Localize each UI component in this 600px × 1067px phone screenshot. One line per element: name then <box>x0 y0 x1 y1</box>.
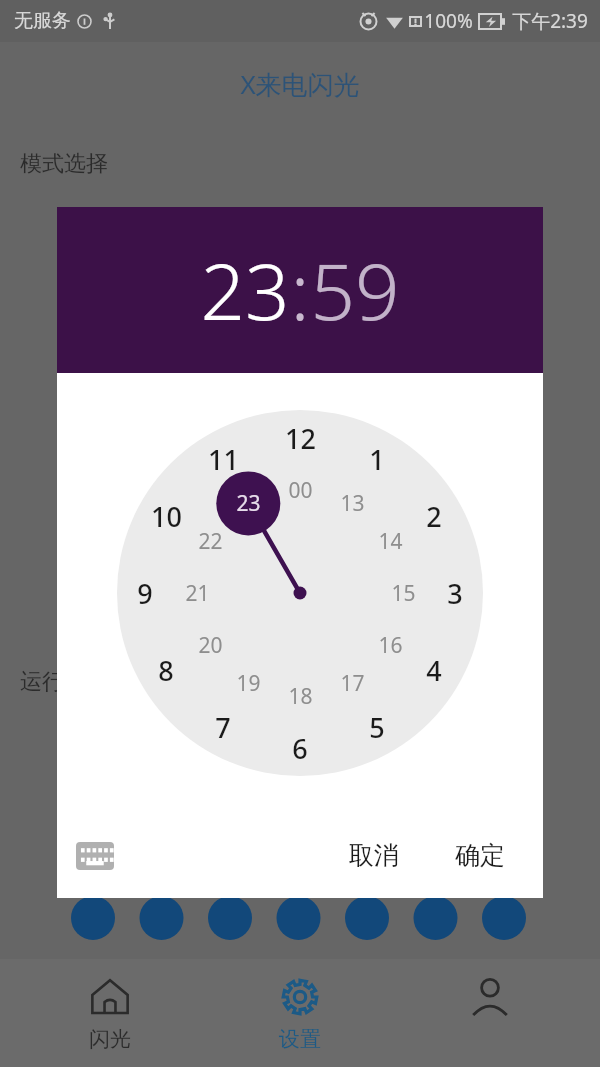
button[interactable]: 确定 <box>439 830 521 881</box>
button[interactable]: 23 <box>200 237 290 343</box>
staticText: 23 <box>236 489 261 518</box>
staticText: 15 <box>391 579 416 608</box>
staticText: 22 <box>198 527 223 556</box>
button[interactable]: 7 <box>200 704 246 750</box>
staticText: 19 <box>236 669 261 698</box>
staticText: 3 <box>447 575 463 612</box>
button[interactable]: 19 <box>225 660 271 706</box>
staticText: 18 <box>288 682 313 711</box>
button[interactable]: Profile <box>410 966 570 1060</box>
button[interactable]: 15 <box>380 570 426 616</box>
staticText: 21 <box>185 579 210 608</box>
button[interactable]: 17 <box>329 660 375 706</box>
staticText: 20 <box>198 631 223 660</box>
staticText: 4 <box>426 652 442 689</box>
staticText: 8 <box>158 652 174 689</box>
button[interactable]: 21 <box>174 570 220 616</box>
staticText: 23 <box>200 237 290 343</box>
staticText: 闪光 <box>89 1026 131 1052</box>
button[interactable]: 设置 <box>220 966 380 1060</box>
button[interactable]: 闪光 <box>30 966 190 1060</box>
staticText: 下午2:39 <box>512 8 588 34</box>
button[interactable]: 23 <box>225 480 271 526</box>
button[interactable]: 1 <box>354 436 400 482</box>
staticText: : <box>290 237 310 343</box>
staticText: 5 <box>369 709 385 746</box>
staticText: 运行 <box>20 668 64 696</box>
button[interactable]: 8 <box>143 647 189 693</box>
staticText: 取消 <box>349 840 399 871</box>
staticText: 16 <box>378 631 403 660</box>
button[interactable]: 6 <box>277 725 323 771</box>
button[interactable]: 9 <box>122 570 168 616</box>
staticText: 10 <box>151 498 182 535</box>
staticText: 确定 <box>455 840 505 871</box>
button[interactable]: 22 <box>187 518 233 564</box>
staticText: 00 <box>288 476 313 505</box>
staticText: 6 <box>292 730 308 767</box>
button[interactable]: 12 <box>277 415 323 461</box>
staticText: 2 <box>426 498 442 535</box>
staticText: 59 <box>310 237 400 343</box>
button[interactable]: 4 <box>411 647 457 693</box>
staticText: 1 <box>369 441 385 478</box>
staticText: 无服务 <box>14 9 71 33</box>
staticText: 13 <box>340 489 365 518</box>
button[interactable]: 18 <box>277 673 323 719</box>
button[interactable]: 10 <box>143 493 189 539</box>
button[interactable]: 00 <box>277 467 323 513</box>
staticText: 100% <box>424 8 473 34</box>
button[interactable]: 20 <box>187 622 233 668</box>
staticText: 7 <box>215 709 231 746</box>
button[interactable]: Switch to keyboard input <box>73 834 117 878</box>
button[interactable]: 14 <box>367 518 413 564</box>
staticText: 模式选择 <box>20 150 108 178</box>
staticText: 9 <box>137 575 153 612</box>
button[interactable]: 2 <box>411 493 457 539</box>
button[interactable]: 59 <box>310 237 400 343</box>
staticText: 设置 <box>279 1026 321 1052</box>
staticText: 14 <box>378 527 403 556</box>
staticText: X来电闪光 <box>240 66 360 102</box>
button[interactable]: 13 <box>329 480 375 526</box>
staticText: 12 <box>285 420 316 457</box>
button[interactable]: 5 <box>354 704 400 750</box>
staticText: 11 <box>208 441 239 478</box>
button[interactable]: 16 <box>367 622 413 668</box>
button[interactable]: 3 <box>432 570 478 616</box>
button[interactable]: 11 <box>200 436 246 482</box>
staticText: 17 <box>340 669 365 698</box>
button[interactable]: 取消 <box>333 830 415 881</box>
